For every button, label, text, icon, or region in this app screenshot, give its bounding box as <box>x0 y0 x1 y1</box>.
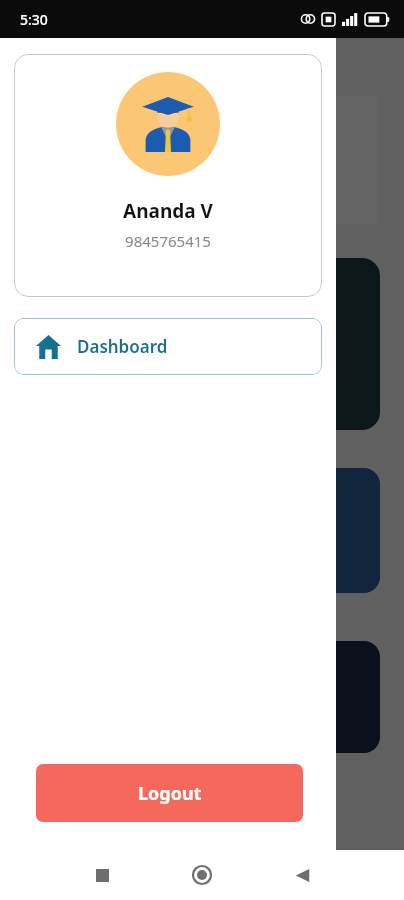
button[interactable]: Recent apps <box>52 850 152 900</box>
button[interactable]: Ananda V <box>14 54 322 297</box>
button[interactable]: Logout <box>36 764 303 822</box>
staticText: Mobile <box>120 104 258 158</box>
staticText: 9845765415 <box>14 231 322 251</box>
button[interactable]: Back <box>252 850 352 900</box>
staticText: Dashboard <box>77 335 168 358</box>
staticText: CAMPUS <box>120 158 248 199</box>
staticText: 5:30 <box>20 10 48 29</box>
staticText: Logout <box>138 781 202 806</box>
other: Dashboard <box>36 334 61 359</box>
staticText: Ananda V <box>14 198 322 224</box>
button[interactable]: Home <box>152 850 252 900</box>
button[interactable]: Dashboard <box>14 318 322 375</box>
